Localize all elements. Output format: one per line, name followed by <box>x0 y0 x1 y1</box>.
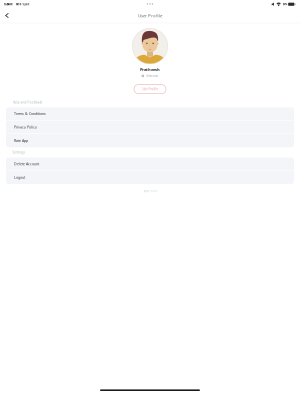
staticText: Edit Profile <box>141 87 158 91</box>
staticText: Privacy Policy <box>14 125 37 129</box>
button[interactable]: Back <box>0 10 13 21</box>
staticText: User Profile <box>138 13 162 18</box>
staticText: Rate App <box>14 138 28 143</box>
staticText: Help and Feedback <box>12 100 42 104</box>
staticText: Settings <box>12 150 24 154</box>
staticText: Delete Account <box>14 161 39 166</box>
staticText: Unknown <box>145 74 158 78</box>
button[interactable]: Terms & Conditions <box>6 107 294 121</box>
staticText: Wed 5 Jun <box>15 2 29 6</box>
button[interactable]: Rate App <box>6 134 294 147</box>
staticText: App v1.0.0 <box>143 189 156 192</box>
button[interactable]: Delete Account <box>6 157 294 171</box>
staticText: Terms & Conditions <box>14 111 46 116</box>
staticText: 87% <box>283 2 287 6</box>
button[interactable]: Privacy Policy <box>6 121 294 134</box>
button[interactable]: Edit Profile <box>134 85 166 94</box>
staticText: 8:28AM <box>4 2 12 6</box>
staticText: Logout <box>14 175 25 180</box>
staticText: Pratheesh <box>140 67 160 72</box>
button[interactable]: Logout <box>6 171 294 184</box>
